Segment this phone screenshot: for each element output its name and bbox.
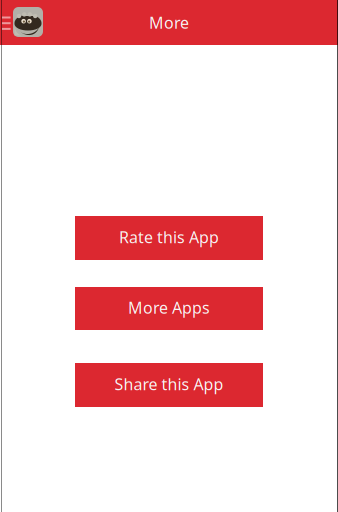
button[interactable]: Share this App [75, 363, 263, 407]
staticText: Share this App [114, 373, 223, 395]
button[interactable]: Rate this App [75, 216, 263, 260]
staticText: More [149, 12, 189, 33]
button[interactable]: More Apps [75, 287, 263, 330]
staticText: Rate this App [119, 226, 219, 248]
button[interactable]: Menu [0, 0, 46, 45]
staticText: More Apps [128, 297, 210, 318]
